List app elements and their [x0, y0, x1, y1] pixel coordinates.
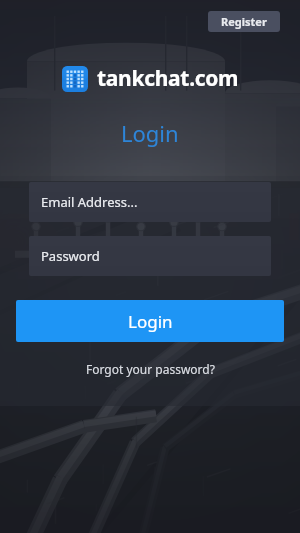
staticText: Forgot your password?: [86, 361, 215, 377]
button[interactable]: Password: [29, 236, 271, 276]
button[interactable]: Email Address...: [29, 182, 271, 222]
button[interactable]: Register: [208, 11, 280, 32]
staticText: Login: [128, 310, 173, 333]
staticText: Register: [221, 14, 267, 29]
staticText: Login: [121, 118, 179, 148]
other: tankchat logo: [62, 66, 88, 92]
staticText: Password: [41, 247, 100, 265]
staticText: Email Address...: [41, 193, 138, 211]
button[interactable]: Forgot your password?: [76, 358, 225, 380]
staticText: tankchat.com: [97, 64, 239, 93]
button[interactable]: Login: [16, 300, 284, 342]
